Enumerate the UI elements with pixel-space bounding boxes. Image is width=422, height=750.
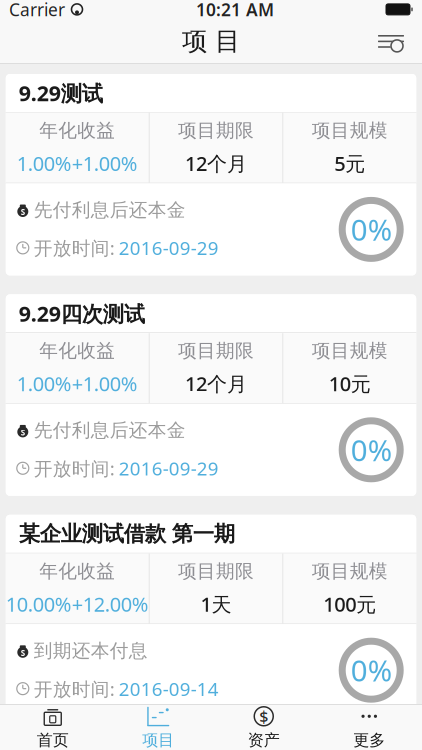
staticText: 9.29测试 — [19, 79, 103, 107]
staticText: 100元 — [323, 591, 376, 617]
staticText: 9.29四次测试 — [19, 299, 145, 327]
staticText: S — [21, 427, 25, 438]
staticText: 年化收益 — [39, 119, 115, 142]
staticText: $ — [259, 706, 268, 727]
staticText: 项目规模 — [312, 119, 388, 142]
staticText: 1.00%+1.00% — [17, 370, 138, 397]
button[interactable]: Filter and search — [368, 23, 414, 59]
staticText: 项目 — [142, 730, 174, 750]
button[interactable]: 更多 — [316, 705, 422, 750]
staticText: 项目规模 — [312, 339, 388, 362]
staticText: 开放时间: — [34, 456, 115, 481]
staticText: 0% — [351, 430, 392, 469]
staticText: 项目期限 — [178, 560, 254, 583]
staticText: 2016-09-14 — [119, 676, 219, 701]
staticText: 10元 — [329, 370, 371, 397]
staticText: 更多 — [353, 730, 385, 750]
button[interactable]: 9.29四次测试 — [6, 294, 416, 496]
staticText: 项目规模 — [312, 560, 388, 583]
staticText: 开放时间: — [34, 235, 115, 260]
staticText: 1.00%+1.00% — [17, 150, 138, 176]
staticText: 项目期限 — [178, 119, 254, 142]
staticText: 12个月 — [185, 370, 247, 397]
staticText: 先付利息后还本金 — [34, 419, 186, 442]
staticText: 1天 — [200, 591, 231, 617]
staticText: 首页 — [37, 730, 69, 750]
staticText: 某企业测试借款 第一期 — [19, 521, 235, 547]
staticText: 先付利息后还本金 — [34, 198, 186, 221]
staticText: 项 目 — [182, 26, 240, 57]
button[interactable]: 9.29测试 — [6, 74, 416, 275]
button[interactable]: 项目 — [105, 705, 211, 750]
button[interactable]: $ — [211, 705, 316, 750]
staticText: S — [21, 647, 25, 658]
staticText: 0% — [351, 651, 392, 690]
staticText: 开放时间: — [34, 676, 115, 701]
button[interactable]: 首页 — [0, 705, 105, 750]
staticText: 项目期限 — [178, 339, 254, 362]
staticText: 12个月 — [185, 150, 247, 176]
staticText: 0% — [351, 210, 392, 249]
staticText: 5元 — [334, 150, 365, 176]
staticText: 2016-09-29 — [119, 456, 219, 481]
staticText: 10:21 AM — [196, 0, 274, 21]
staticText: Carrier — [9, 0, 65, 21]
staticText: 年化收益 — [39, 339, 115, 362]
staticText: 10.00%+12.00% — [6, 591, 149, 617]
staticText: 年化收益 — [39, 560, 115, 583]
staticText: 资产 — [248, 730, 280, 750]
staticText: 到期还本付息 — [34, 639, 148, 662]
staticText: S — [21, 207, 25, 217]
staticText: 2016-09-29 — [119, 235, 219, 260]
button[interactable]: 某企业测试借款 第一期 — [6, 515, 416, 716]
